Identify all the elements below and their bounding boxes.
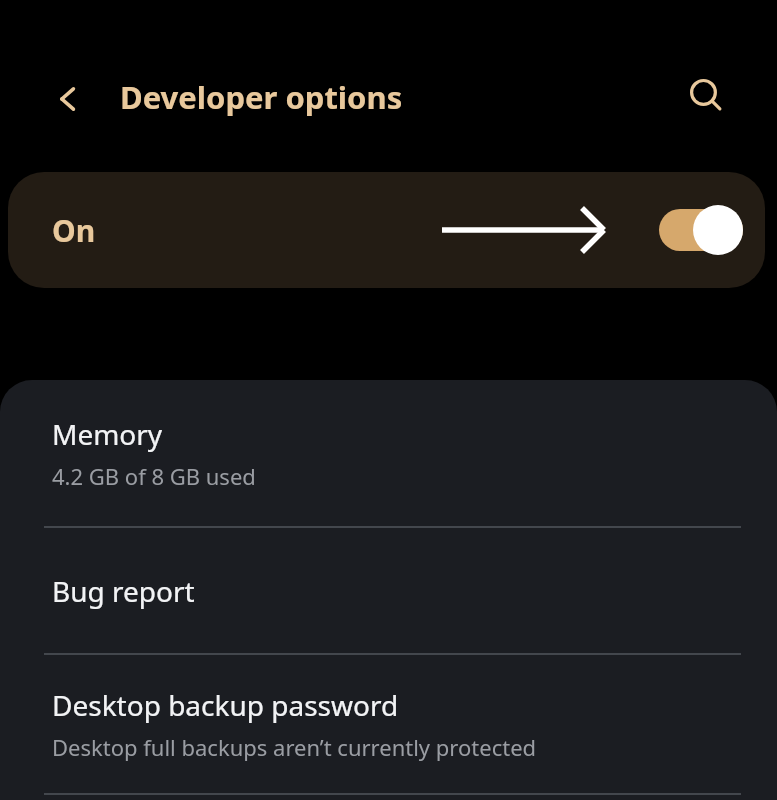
staticText: Desktop full backups aren’t currently pr… [52,732,537,762]
staticText: On [52,210,96,251]
staticText: Bug report [52,572,195,610]
staticText: Desktop backup password [52,686,399,724]
button[interactable]: Developer options toggle, on [659,204,743,256]
button[interactable]: On [8,172,765,288]
staticText: Memory [52,415,163,453]
button[interactable]: Desktop backup password [0,655,777,793]
staticText: 4.2 GB of 8 GB used [52,461,256,491]
button[interactable]: Bug report [0,528,777,653]
button[interactable]: Back [42,71,98,127]
staticText: Developer options [120,76,403,118]
button[interactable]: Search [676,66,736,126]
button[interactable]: Memory [0,380,777,526]
